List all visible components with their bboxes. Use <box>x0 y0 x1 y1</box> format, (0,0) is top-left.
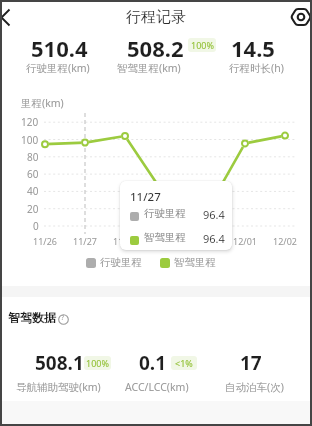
staticText: 智驾里程(km) <box>117 61 181 75</box>
staticText: 行程时长(h) <box>229 61 284 75</box>
staticText: 行驶里程 <box>100 256 142 269</box>
staticText: 导航辅助驾驶(km) <box>16 380 101 394</box>
staticText: 里程(km) <box>21 96 64 110</box>
staticText: 11/27 <box>73 235 97 247</box>
staticText: ACC/LCC(km) <box>125 380 189 394</box>
staticText: 20 <box>27 202 39 216</box>
staticText: 100% <box>86 357 109 369</box>
button[interactable] <box>120 181 232 250</box>
staticText: 100% <box>191 39 214 51</box>
staticText: 11/28 <box>113 235 137 247</box>
staticText: 自动泊车(次) <box>225 380 284 394</box>
staticText: 508.1 <box>35 350 84 376</box>
staticText: 11/27 <box>130 189 161 205</box>
staticText: <1% <box>175 357 193 369</box>
staticText: 11/29 <box>153 235 177 247</box>
staticText: 行驶里程 <box>144 207 186 220</box>
staticText: 11/30 <box>193 235 217 247</box>
button[interactable] <box>288 4 312 30</box>
staticText: 100 <box>21 133 39 147</box>
staticText: 120 <box>21 115 39 129</box>
staticText: 60 <box>27 167 39 181</box>
staticText: 510.4 <box>31 33 88 63</box>
button[interactable] <box>157 252 219 270</box>
staticText: ? <box>61 313 65 323</box>
staticText: 508.2 <box>127 33 184 63</box>
staticText: 17 <box>240 350 262 376</box>
staticText: 40 <box>27 184 39 198</box>
staticText: 0 <box>33 219 39 233</box>
staticText: 11/26 <box>33 235 57 247</box>
staticText: 智驾数据 <box>8 310 56 325</box>
staticText: 行驶里程(km) <box>26 61 90 75</box>
staticText: 96.4 <box>203 207 225 222</box>
staticText: 行程记录 <box>126 8 186 27</box>
staticText: 12/02 <box>273 235 297 247</box>
staticText: 12/01 <box>233 235 257 247</box>
staticText: 0.1 <box>139 350 167 376</box>
staticText: 80 <box>27 150 39 164</box>
button[interactable] <box>0 4 22 30</box>
staticText: 96.4 <box>203 231 225 246</box>
staticText: 智驾里程 <box>174 256 216 269</box>
staticText: 智驾里程 <box>144 231 186 244</box>
button[interactable] <box>84 252 146 270</box>
staticText: 14.5 <box>231 33 275 63</box>
